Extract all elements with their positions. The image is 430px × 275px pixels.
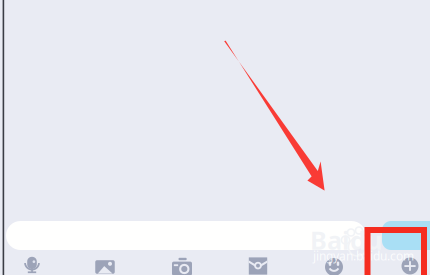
button[interactable]: More bbox=[399, 256, 421, 275]
staticText: jingyan.baidu.com bbox=[313, 248, 414, 264]
button[interactable]: Photos bbox=[94, 257, 116, 275]
staticText: Baidu bbox=[310, 223, 382, 257]
button[interactable]: Voice message bbox=[21, 256, 43, 275]
button[interactable]: Red packet bbox=[247, 256, 269, 275]
button[interactable]: Camera bbox=[171, 257, 193, 275]
button[interactable]: Emoji bbox=[323, 257, 345, 275]
